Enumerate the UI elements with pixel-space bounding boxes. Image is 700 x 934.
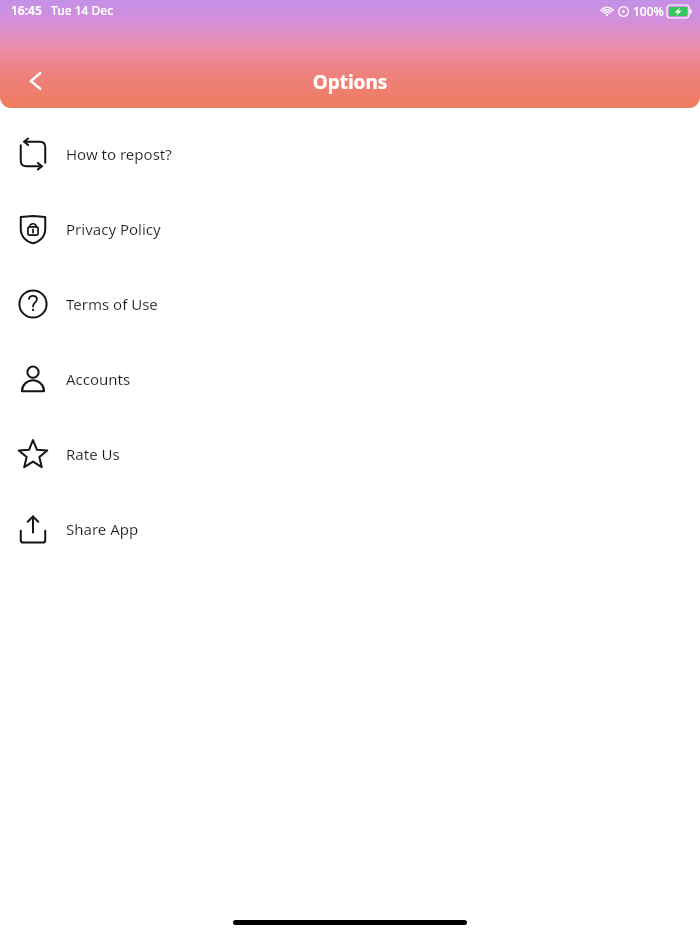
button[interactable]: Share App bbox=[0, 491, 700, 566]
button[interactable]: How to repost? bbox=[0, 116, 700, 191]
button[interactable]: Accounts bbox=[0, 341, 700, 416]
button[interactable]: Terms of Use bbox=[0, 266, 700, 341]
staticText: 16:45 bbox=[11, 2, 42, 18]
button[interactable]: Privacy Policy bbox=[0, 191, 700, 266]
staticText: Rate Us bbox=[66, 444, 120, 464]
staticText: How to repost? bbox=[66, 144, 172, 164]
staticText: Accounts bbox=[66, 369, 131, 389]
staticText: Tue 14 Dec bbox=[51, 2, 114, 18]
button[interactable]: Rate Us bbox=[0, 416, 700, 491]
staticText: Share App bbox=[66, 519, 139, 539]
staticText: Options bbox=[0, 69, 700, 95]
staticText: Privacy Policy bbox=[66, 219, 161, 239]
staticText: 100% bbox=[633, 3, 664, 19]
staticText: Terms of Use bbox=[66, 294, 158, 314]
button[interactable]: Back bbox=[14, 59, 58, 103]
